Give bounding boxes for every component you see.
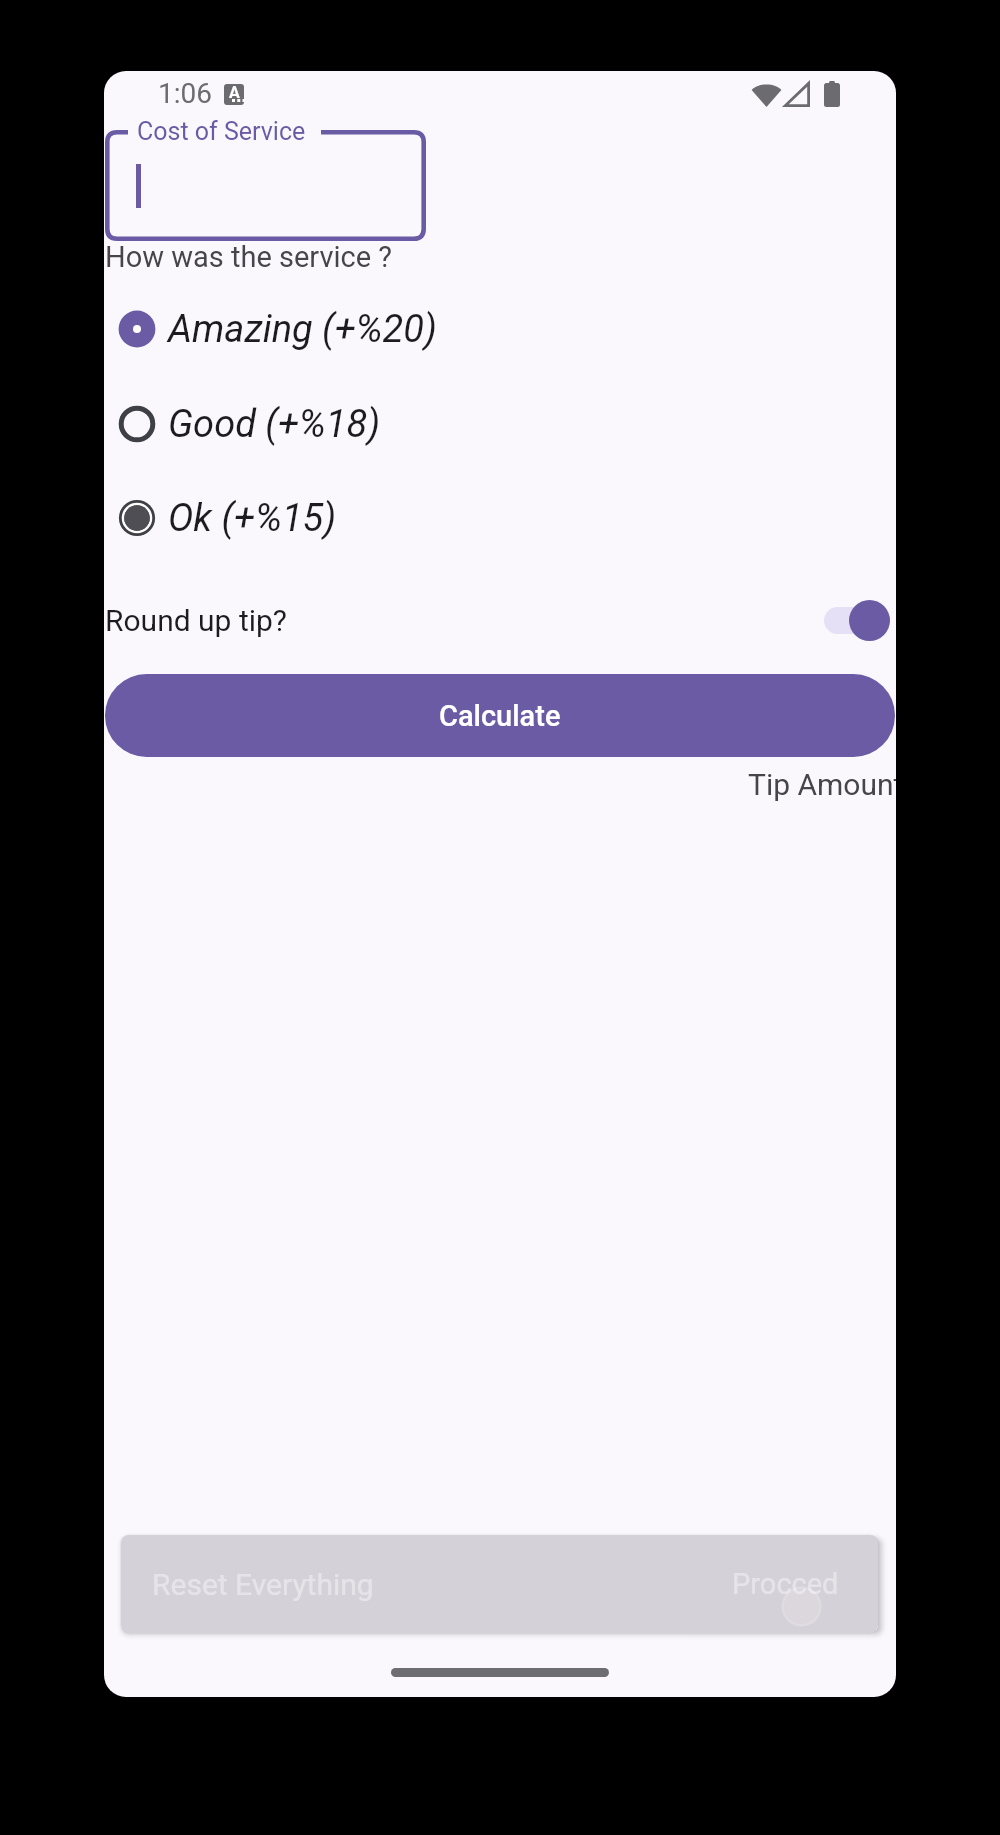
staticText: Good (+%18) <box>168 402 381 447</box>
staticText: Reset Everything <box>152 1567 374 1602</box>
button[interactable]: Good (+%18) <box>104 376 896 472</box>
staticText: Tip Amount <box>748 767 896 802</box>
button[interactable]: Ok (+%15) <box>104 470 896 566</box>
button[interactable]: Procced <box>732 1567 839 1601</box>
staticText: Procced <box>732 1567 839 1601</box>
staticText: Calculate <box>439 699 561 733</box>
button[interactable]: Amazing (+%20) <box>104 281 896 377</box>
staticText: Ok (+%15) <box>168 496 337 541</box>
staticText: Amazing (+%20) <box>168 307 437 352</box>
button[interactable]: Reset Everything <box>152 1567 374 1602</box>
staticText: Cost of Service <box>137 117 306 146</box>
staticText: Round up tip? <box>105 603 288 638</box>
button[interactable]: Cost of Service <box>105 130 426 241</box>
staticText: How was the service ? <box>105 240 392 274</box>
other: Accessibility <box>224 84 244 105</box>
staticText: A <box>229 84 240 102</box>
button[interactable]: Round up tip toggle <box>824 596 890 644</box>
button[interactable]: Calculate <box>105 674 895 757</box>
staticText: 1:06 <box>158 77 212 110</box>
